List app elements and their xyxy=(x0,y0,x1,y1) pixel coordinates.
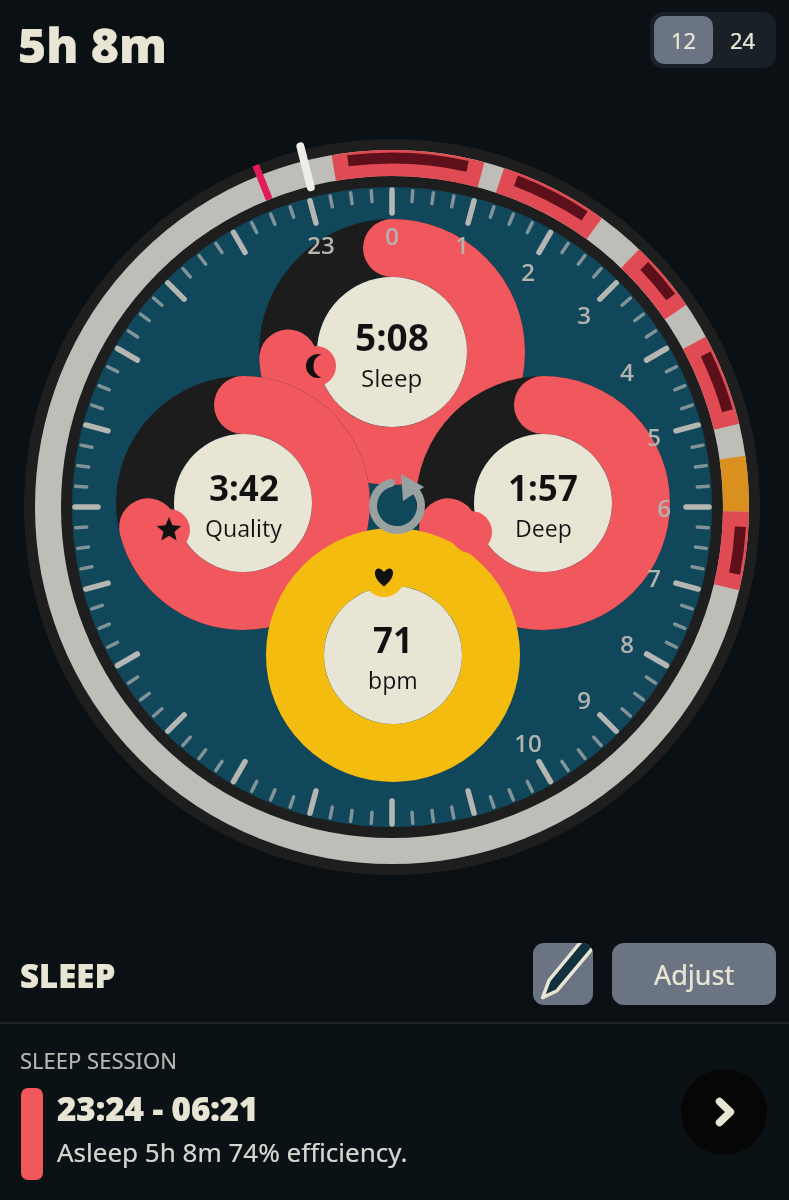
staticText: 7 xyxy=(647,561,661,594)
staticText: 1:57 xyxy=(508,464,578,512)
button[interactable]: 71 xyxy=(313,611,473,699)
staticText: Adjust xyxy=(654,956,735,993)
staticText: SLEEP xyxy=(20,953,116,998)
staticText: 8 xyxy=(620,627,634,660)
staticText: 6 xyxy=(657,491,671,524)
staticText: 4 xyxy=(620,355,634,388)
staticText: bpm xyxy=(368,664,418,695)
staticText: 2 xyxy=(521,255,535,288)
button[interactable]: Open session details xyxy=(681,1069,767,1155)
staticText: 5 xyxy=(647,420,661,453)
staticText: Quality xyxy=(205,512,282,543)
staticText: 1 xyxy=(455,228,469,261)
staticText: 24 xyxy=(730,25,756,55)
button[interactable]: 12 xyxy=(654,16,713,64)
staticText: Asleep 5h 8m 74% efficiency. xyxy=(57,1134,408,1169)
staticText: 9 xyxy=(577,683,591,716)
staticText: 3 xyxy=(577,298,591,331)
staticText: 3:42 xyxy=(209,464,279,512)
button[interactable]: 1:57 xyxy=(463,459,623,547)
button[interactable]: SLEEP SESSION xyxy=(0,1024,789,1200)
button[interactable]: Adjust xyxy=(612,943,776,1005)
staticText: 5:08 xyxy=(355,311,429,361)
staticText: 5h 8m xyxy=(18,12,167,77)
button[interactable]: Edit xyxy=(533,943,593,1005)
staticText: Deep xyxy=(515,512,572,543)
staticText: 0 xyxy=(385,219,399,252)
button[interactable]: 24 xyxy=(713,16,772,64)
staticText: SLEEP SESSION xyxy=(20,1045,177,1075)
button[interactable]: 3:42 xyxy=(163,459,323,547)
staticText: 71 xyxy=(373,616,414,664)
button[interactable]: 5:08 xyxy=(312,308,472,396)
staticText: Sleep xyxy=(361,361,423,394)
staticText: 10 xyxy=(514,726,542,759)
staticText: 23:24 - 06:21 xyxy=(57,1086,259,1131)
staticText: 12 xyxy=(671,25,697,55)
staticText: 23 xyxy=(307,228,335,261)
